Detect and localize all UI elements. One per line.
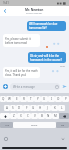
staticText: Go [61, 124, 65, 127]
button[interactable]: E [13, 96, 20, 102]
button[interactable]: X [17, 113, 24, 119]
staticText: I [51, 97, 53, 101]
button[interactable]: U [41, 96, 48, 102]
staticText: 123 [5, 124, 9, 127]
staticText: H [39, 106, 42, 110]
staticText: R [23, 97, 25, 101]
button[interactable]: O [55, 96, 62, 102]
button[interactable]: 123 [0, 122, 13, 128]
button[interactable]: Shift [0, 113, 10, 119]
staticText: J [47, 106, 48, 110]
button[interactable]: D [16, 105, 23, 111]
button[interactable]: S [10, 105, 16, 111]
button[interactable]: G [30, 105, 37, 111]
staticText: A [6, 106, 8, 110]
staticText: G [32, 106, 35, 110]
staticText: Sent [60, 64, 66, 67]
button[interactable]: I [48, 96, 55, 102]
button[interactable]: Backspace [59, 113, 69, 119]
button[interactable]: Mr. Newton [25, 8, 44, 15]
staticText: S [12, 106, 14, 110]
button[interactable]: Write a message [10, 83, 60, 90]
staticText: D [18, 106, 21, 110]
staticText: Z [13, 114, 15, 118]
staticText: Mr. Newton [25, 8, 44, 12]
staticText: Yes, please submit it before tomorrow! [5, 37, 38, 45]
button[interactable]: R [20, 96, 27, 102]
button[interactable]: P [62, 96, 69, 102]
staticText: Ok sir, and will it be the homework in t… [30, 54, 64, 62]
staticText: Yes, it will be for the math class. Than… [5, 69, 38, 77]
staticText: O [57, 97, 60, 101]
button[interactable]: L [58, 105, 65, 111]
button[interactable]: Emoji keyboard [2, 135, 10, 143]
staticText: M [54, 114, 57, 118]
button[interactable]: J [44, 105, 51, 111]
button[interactable]: K [51, 105, 58, 111]
staticText: C [27, 114, 29, 118]
button[interactable]: C [24, 113, 31, 119]
staticText: F [26, 106, 28, 110]
staticText: B [41, 114, 43, 118]
staticText: X [20, 114, 22, 118]
button[interactable]: Back [0, 6, 10, 16]
staticText: 9:41 [3, 1, 9, 5]
staticText: V [34, 114, 36, 118]
button[interactable]: M [52, 113, 59, 119]
button[interactable]: Yes, please submit it before tomorrow! [3, 34, 40, 47]
staticText: Y [37, 97, 39, 101]
button[interactable]: Y [34, 96, 41, 102]
staticText: K [54, 106, 56, 110]
staticText: L [61, 106, 63, 110]
staticText: E [16, 97, 18, 101]
button[interactable]: Send [61, 83, 68, 90]
button[interactable]: W [6, 96, 13, 102]
button[interactable]: V [31, 113, 38, 119]
button[interactable]: Go [56, 122, 69, 128]
staticText: Q [2, 97, 5, 101]
other: Emoji [55, 85, 59, 89]
button[interactable]: Add attachment [2, 83, 9, 90]
button[interactable]: T [27, 96, 34, 102]
button[interactable]: Will homework be due tomorrow Sir? [27, 21, 66, 31]
staticText: N [47, 114, 50, 118]
button[interactable]: F [23, 105, 30, 111]
button[interactable]: Q [0, 96, 6, 102]
button[interactable]: Hide keyboard [59, 135, 67, 143]
staticText: Write a message [13, 85, 35, 89]
staticText: P [65, 97, 67, 101]
button[interactable]: space [13, 122, 56, 128]
button[interactable]: H [37, 105, 44, 111]
button[interactable]: N [45, 113, 52, 119]
button[interactable]: A [4, 105, 10, 111]
staticText: T [30, 97, 32, 101]
staticText: space [31, 124, 38, 127]
staticText: Will homework be due tomorrow Sir? [29, 22, 64, 30]
staticText: U [43, 97, 46, 101]
button[interactable]: Yes, it will be for the math class. Than… [3, 67, 40, 78]
button[interactable]: Z [10, 113, 17, 119]
button[interactable]: Ok sir, and will it be the homework in t… [28, 52, 66, 63]
button[interactable]: B [38, 113, 45, 119]
staticText: W [8, 97, 11, 101]
staticText: Physics Teacher [26, 12, 43, 15]
